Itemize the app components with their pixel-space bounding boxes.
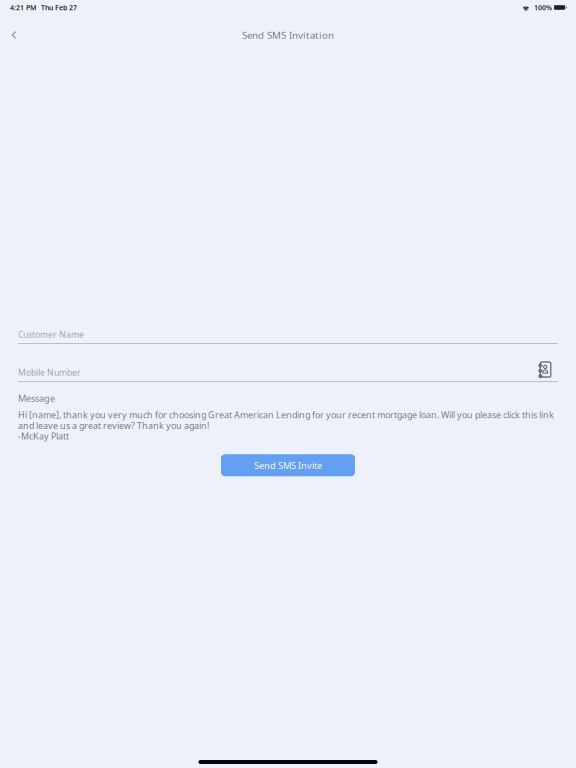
button[interactable]: Back [5,25,23,45]
staticText: Thu Feb 27 [41,3,77,12]
staticText: 100% [534,3,552,12]
button[interactable]: Choose from Contacts [537,361,558,383]
staticText: Hi [name], thank you very much for choos… [18,409,554,441]
staticText: Message [18,392,55,404]
staticText: Send SMS Invitation [242,28,334,42]
staticText: 4:21 PM [10,3,36,12]
staticText: Send SMS Invite [254,459,322,472]
staticText: Customer Name [18,329,84,340]
button[interactable]: Send SMS Invite [221,454,355,476]
staticText: Mobile Number [18,367,81,378]
